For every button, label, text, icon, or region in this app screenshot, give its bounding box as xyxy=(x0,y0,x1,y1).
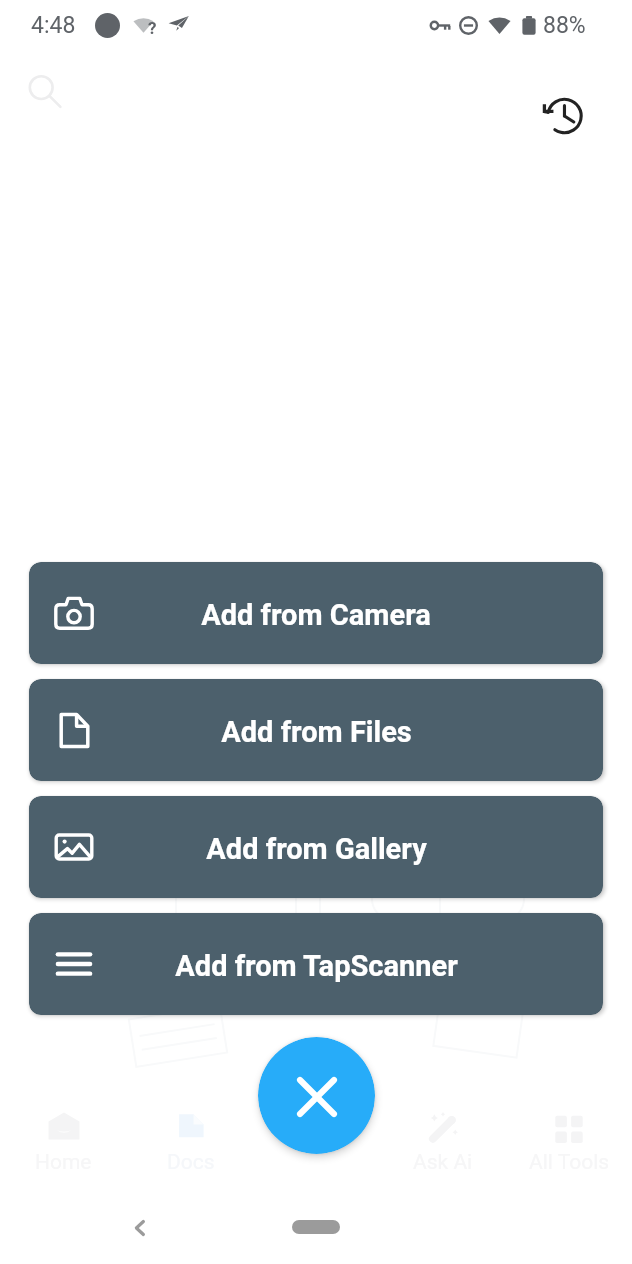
staticText: ? xyxy=(148,18,157,38)
button[interactable]: Add from Files xyxy=(29,679,603,781)
button[interactable]: Back xyxy=(124,1212,156,1244)
staticText: Add from Camera xyxy=(201,598,431,632)
button[interactable]: Search xyxy=(22,68,70,116)
staticText: Ask Ai xyxy=(413,1150,473,1175)
button[interactable]: History xyxy=(538,92,586,140)
staticText: Add from Files xyxy=(221,715,412,749)
button[interactable]: Home xyxy=(292,1220,340,1234)
button[interactable]: Home xyxy=(0,1108,127,1175)
button[interactable]: Add from Camera xyxy=(29,562,603,664)
button[interactable]: Add from Gallery xyxy=(29,796,603,898)
staticText: All Tools xyxy=(529,1150,610,1175)
staticText: 88% xyxy=(543,12,586,39)
button[interactable]: Close xyxy=(258,1037,375,1154)
button[interactable]: Add from TapScanner xyxy=(29,913,603,1015)
staticText: Add from TapScanner xyxy=(175,949,458,983)
staticText: Docs xyxy=(167,1150,215,1175)
staticText: Home xyxy=(35,1150,92,1175)
button[interactable]: All Tools xyxy=(506,1108,632,1175)
staticText: Add from Gallery xyxy=(206,832,427,866)
button[interactable]: Docs xyxy=(127,1108,254,1175)
staticText: 4:48 xyxy=(31,12,76,39)
